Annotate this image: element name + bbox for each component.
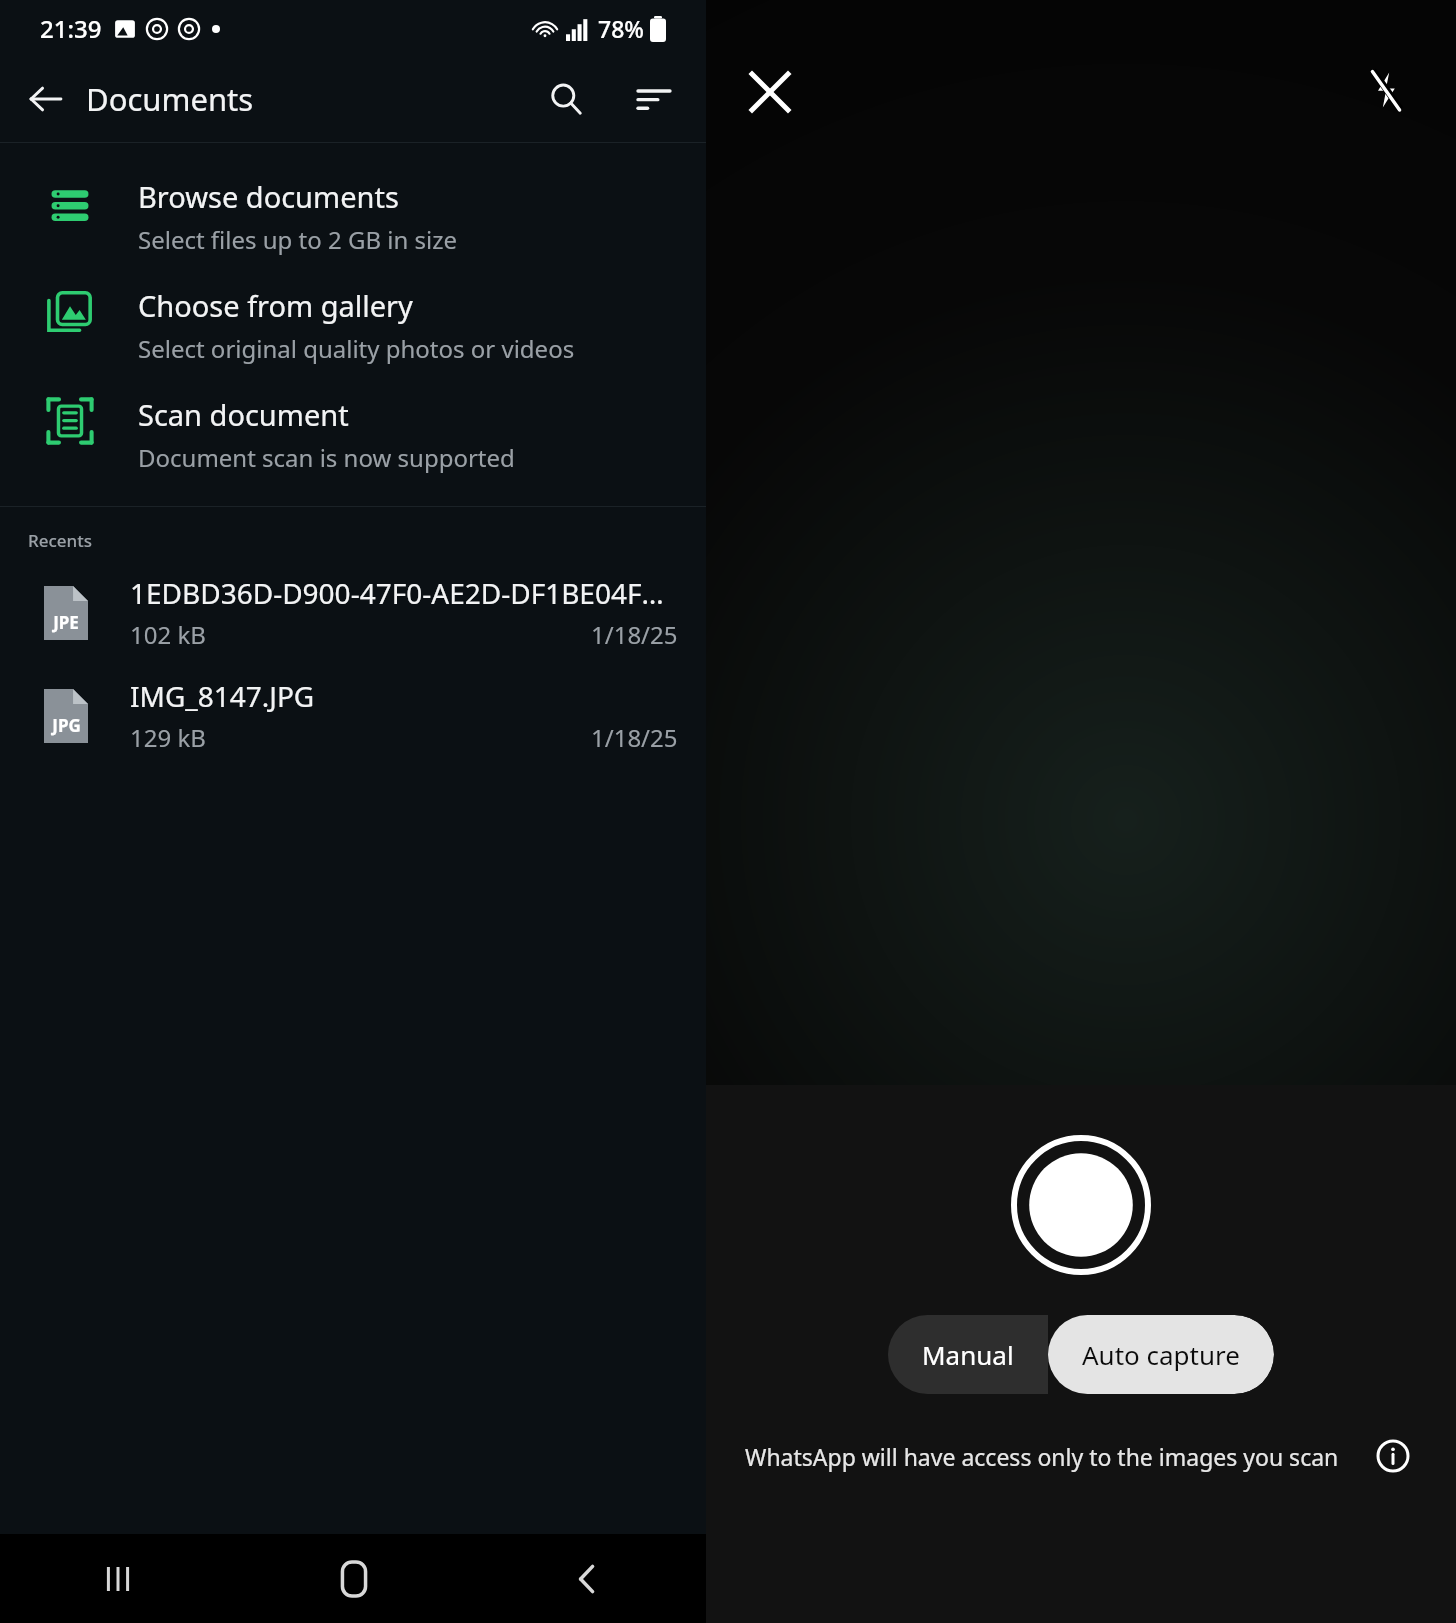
staticText: 21:39 bbox=[40, 12, 102, 45]
staticText: JPE bbox=[53, 611, 79, 634]
staticText: 1/18/25 bbox=[591, 721, 678, 754]
staticText: Browse documents bbox=[138, 177, 399, 216]
staticText: Scan document bbox=[138, 395, 349, 434]
button[interactable]: Close bbox=[734, 56, 806, 128]
button[interactable]: JPE bbox=[0, 574, 706, 651]
button[interactable]: Search bbox=[536, 69, 596, 129]
staticText: 1/18/25 bbox=[591, 618, 678, 651]
button[interactable]: Manual bbox=[888, 1315, 1048, 1394]
button[interactable]: Home bbox=[236, 1534, 471, 1623]
staticText: IMG_8147.JPG bbox=[130, 677, 315, 715]
staticText: WhatsApp will have access only to the im… bbox=[745, 1441, 1339, 1472]
staticText: 1EDBD36D-D900-47F0-AE2D-DF1BE04F58… bbox=[130, 574, 678, 612]
staticText: Recents bbox=[28, 529, 93, 552]
staticText: Select files up to 2 GB in size bbox=[138, 223, 458, 256]
staticText: Documents bbox=[86, 78, 254, 120]
staticText: Auto capture bbox=[1082, 1337, 1240, 1372]
button[interactable]: Browse documents bbox=[0, 165, 706, 274]
button[interactable]: More information bbox=[1369, 1432, 1417, 1480]
staticText: 102 kB bbox=[130, 618, 206, 651]
staticText: Manual bbox=[922, 1337, 1014, 1372]
button[interactable]: Choose from gallery bbox=[0, 274, 706, 383]
button[interactable]: Sort bbox=[626, 71, 682, 127]
staticText: JPG bbox=[52, 714, 81, 737]
staticText: 78% bbox=[598, 13, 644, 44]
staticText: Document scan is now supported bbox=[138, 441, 515, 474]
button[interactable]: Flash off bbox=[1350, 54, 1422, 126]
staticText: 129 kB bbox=[130, 721, 206, 754]
button[interactable]: JPG bbox=[0, 677, 706, 754]
button[interactable]: Capture bbox=[1011, 1135, 1151, 1275]
button[interactable]: Auto capture bbox=[1048, 1315, 1274, 1394]
button[interactable]: Scan document bbox=[0, 383, 706, 492]
button[interactable]: Back bbox=[471, 1534, 706, 1623]
button[interactable]: Back bbox=[16, 69, 76, 129]
button[interactable]: Recent apps bbox=[0, 1534, 236, 1623]
staticText: Select original quality photos or videos bbox=[138, 332, 575, 365]
staticText: Choose from gallery bbox=[138, 286, 413, 325]
